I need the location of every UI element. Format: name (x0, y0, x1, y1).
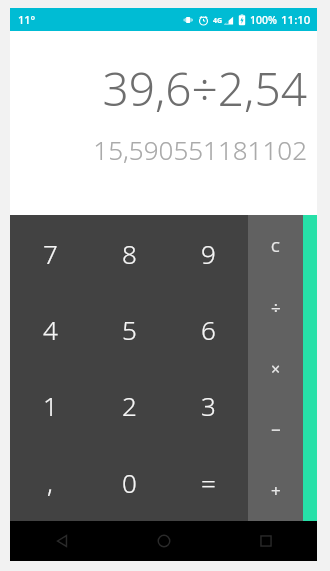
staticText: 39,6÷2,54 (102, 57, 307, 120)
staticText: 9 (201, 236, 216, 271)
staticText: 3 (201, 388, 216, 423)
staticText: 4G (213, 16, 223, 26)
button[interactable]: 7 (10, 215, 90, 291)
button[interactable]: = (169, 444, 248, 521)
staticText: 2 (122, 388, 137, 423)
staticText: 100% (250, 13, 277, 27)
staticText: ÷ (271, 296, 281, 319)
staticText: 7 (43, 236, 58, 271)
staticText: 6 (201, 312, 216, 347)
button[interactable]: C (248, 215, 303, 277)
staticText: + (271, 479, 281, 502)
button[interactable]: 6 (169, 291, 248, 367)
staticText: , (47, 465, 53, 500)
button[interactable]: 4 (10, 291, 90, 367)
staticText: C (271, 237, 280, 256)
staticText: 8 (122, 236, 137, 271)
staticText: = (201, 465, 216, 500)
button[interactable]: + (248, 460, 303, 521)
staticText: 15,590551181102 (93, 132, 307, 167)
staticText: 1 (43, 388, 58, 423)
button[interactable]: 2 (90, 367, 169, 444)
button[interactable]: 1 (10, 367, 90, 444)
button[interactable]: Recent apps (215, 521, 317, 561)
button[interactable]: Back (10, 521, 113, 561)
staticText: 11:10 (281, 12, 311, 28)
staticText: 11° (18, 12, 36, 27)
button[interactable]: 9 (169, 215, 248, 291)
staticText: 5 (122, 312, 137, 347)
staticText: × (271, 358, 281, 380)
staticText: − (271, 418, 281, 441)
button[interactable]: 8 (90, 215, 169, 291)
staticText: 0 (122, 465, 137, 500)
button[interactable]: 3 (169, 367, 248, 444)
staticText: 4 (43, 312, 58, 347)
button[interactable]: × (248, 338, 303, 399)
button[interactable]: 0 (90, 444, 169, 521)
button[interactable]: , (10, 444, 90, 521)
button[interactable]: − (248, 399, 303, 460)
button[interactable]: 5 (90, 291, 169, 367)
button[interactable]: Home (113, 521, 215, 561)
button[interactable]: ÷ (248, 277, 303, 338)
